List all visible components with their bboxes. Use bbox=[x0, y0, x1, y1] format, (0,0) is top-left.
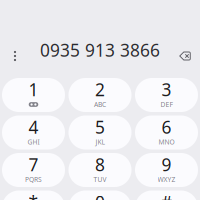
staticText: TUV bbox=[93, 175, 106, 184]
staticText: 0 bbox=[95, 190, 105, 200]
staticText: 9 bbox=[161, 153, 171, 176]
button[interactable]: 8 bbox=[68, 153, 131, 187]
staticText: 6 bbox=[161, 115, 171, 138]
staticText: JKL bbox=[95, 138, 104, 146]
button[interactable]: 0 bbox=[68, 190, 131, 200]
staticText: PQRS bbox=[25, 175, 42, 184]
button[interactable]: 4 bbox=[2, 115, 65, 149]
button[interactable]: 2 bbox=[68, 78, 131, 112]
staticText: 7 bbox=[28, 153, 38, 176]
button[interactable]: More options bbox=[4, 45, 26, 67]
staticText: WXYZ bbox=[157, 175, 175, 184]
button[interactable]: 6 bbox=[135, 115, 198, 149]
button[interactable]: 5 bbox=[68, 115, 131, 149]
button[interactable]: Delete bbox=[174, 45, 196, 67]
staticText: MNO bbox=[158, 138, 174, 146]
button[interactable]: 9 bbox=[135, 153, 198, 187]
button[interactable]: 3 bbox=[135, 78, 198, 112]
staticText: 8 bbox=[95, 153, 105, 176]
button[interactable]: * bbox=[2, 190, 65, 200]
staticText: 2 bbox=[95, 78, 105, 101]
staticText: 1 bbox=[28, 78, 38, 101]
button[interactable]: # bbox=[135, 190, 198, 200]
button[interactable]: 1 bbox=[2, 78, 65, 112]
staticText: ABC bbox=[94, 100, 106, 109]
staticText: GHI bbox=[27, 138, 39, 146]
staticText: 5 bbox=[95, 115, 105, 138]
staticText: DEF bbox=[160, 100, 172, 109]
staticText: * bbox=[28, 190, 38, 200]
button[interactable]: 7 bbox=[2, 153, 65, 187]
staticText: 3 bbox=[161, 78, 171, 101]
staticText: # bbox=[161, 190, 172, 200]
staticText: 0935 913 3866 bbox=[40, 38, 160, 61]
staticText: 4 bbox=[28, 115, 38, 138]
